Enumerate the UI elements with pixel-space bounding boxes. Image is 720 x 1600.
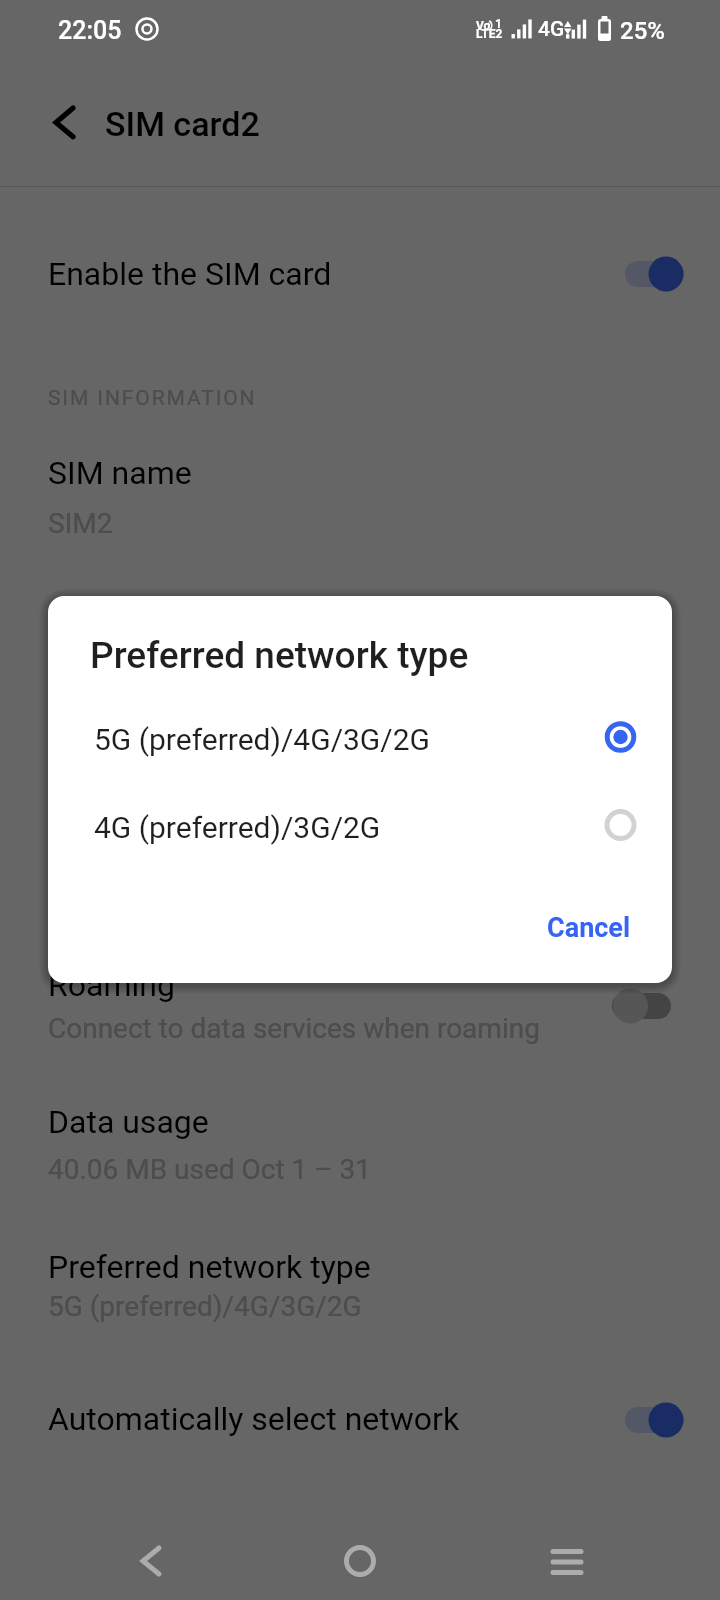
staticText: SIM INFORMATION xyxy=(48,386,257,411)
button[interactable]: Home xyxy=(312,1513,408,1600)
staticText: SIM card2 xyxy=(105,104,260,144)
staticText: Vo xyxy=(476,19,491,33)
button[interactable]: Cancel xyxy=(528,895,650,961)
button[interactable]: Preferred network type xyxy=(0,1228,720,1338)
button[interactable]: Back xyxy=(103,1513,199,1600)
staticText: LTE2 xyxy=(476,27,503,41)
button[interactable]: Roaming xyxy=(0,946,720,1060)
button[interactable]: Enable the SIM card xyxy=(0,215,720,335)
staticText: 4G (preferred)/3G/2G xyxy=(94,810,381,845)
staticText: SIM2 xyxy=(48,507,113,540)
staticText: 22:05 xyxy=(58,16,122,45)
staticText: Roaming xyxy=(48,966,175,1004)
button[interactable]: 5G (preferred)/4G/3G/2G xyxy=(48,693,672,781)
staticText: 5G (preferred)/4G/3G/2G xyxy=(94,722,430,757)
staticText: Cancel xyxy=(547,912,631,944)
staticText: 40.06 MB used Oct 1 – 31 xyxy=(48,1153,372,1186)
staticText: Automatically select network xyxy=(48,1400,460,1438)
staticText: Enable the SIM card xyxy=(48,255,332,293)
button[interactable]: Data usage xyxy=(0,1083,720,1201)
button[interactable]: SIM name xyxy=(0,434,720,555)
staticText: Preferred network type xyxy=(90,634,469,677)
button[interactable]: Back xyxy=(38,96,96,154)
staticText: Connect to data services when roaming xyxy=(48,1012,540,1045)
staticText: 4G xyxy=(538,17,565,42)
button[interactable]: Automatically select network xyxy=(0,1360,720,1480)
button[interactable]: Recent apps xyxy=(519,1514,615,1600)
staticText: Data usage xyxy=(48,1103,209,1141)
button[interactable]: 4G (preferred)/3G/2G xyxy=(48,781,672,869)
staticText: Preferred network type xyxy=(48,1248,371,1286)
staticText: 25% xyxy=(620,17,665,45)
staticText: SIM name xyxy=(48,454,192,492)
staticText: 1 xyxy=(495,17,502,31)
staticText: 5G (preferred)/4G/3G/2G xyxy=(48,1290,362,1323)
